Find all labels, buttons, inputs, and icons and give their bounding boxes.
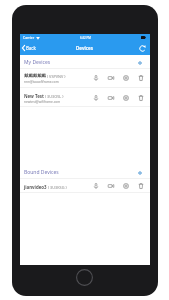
staticText: 6:32 PM bbox=[80, 36, 91, 40]
button[interactable]: Video call bbox=[103, 72, 118, 83]
button[interactable]: Refresh bbox=[138, 44, 150, 53]
staticText: ( 3U3O5L ) bbox=[44, 94, 64, 99]
button[interactable]: Delete bbox=[133, 92, 148, 103]
button[interactable]: Video call bbox=[103, 92, 118, 103]
button[interactable]: Back bbox=[20, 43, 40, 53]
staticText: nnn@isaaofiframe.com bbox=[24, 80, 59, 84]
button[interactable]: Settings bbox=[118, 180, 133, 191]
button[interactable]: New Test bbox=[20, 90, 150, 107]
button[interactable]: Settings bbox=[118, 92, 133, 103]
button[interactable]: jianvideo3 bbox=[20, 181, 150, 192]
staticText: Bound Devices bbox=[24, 169, 59, 176]
staticText: jianvideo3 bbox=[24, 184, 47, 190]
button[interactable]: Microphone bbox=[88, 92, 103, 103]
button[interactable]: Microphone bbox=[88, 72, 103, 83]
button[interactable]: Delete bbox=[133, 72, 148, 83]
staticText: ( VSPVNV ) bbox=[46, 74, 66, 79]
staticText: newtest@wififrame.com bbox=[24, 100, 61, 104]
staticText: New Test bbox=[24, 93, 44, 99]
button[interactable]: Add device bbox=[136, 169, 150, 177]
staticText: 戴戴戴戴戴 bbox=[24, 73, 46, 79]
button[interactable]: Add device bbox=[136, 59, 150, 67]
staticText: My Devices bbox=[24, 59, 51, 66]
staticText: ( 3U3KSG ) bbox=[47, 185, 67, 190]
button[interactable]: 戴戴戴戴戴 bbox=[20, 70, 150, 87]
staticText: Devices bbox=[76, 45, 94, 51]
button[interactable]: Video call bbox=[103, 180, 118, 191]
staticText: Back bbox=[26, 45, 36, 51]
button[interactable]: Delete bbox=[133, 180, 148, 191]
button[interactable]: Settings bbox=[118, 72, 133, 83]
button[interactable]: Microphone bbox=[88, 180, 103, 191]
staticText: Carrier bbox=[23, 35, 35, 40]
